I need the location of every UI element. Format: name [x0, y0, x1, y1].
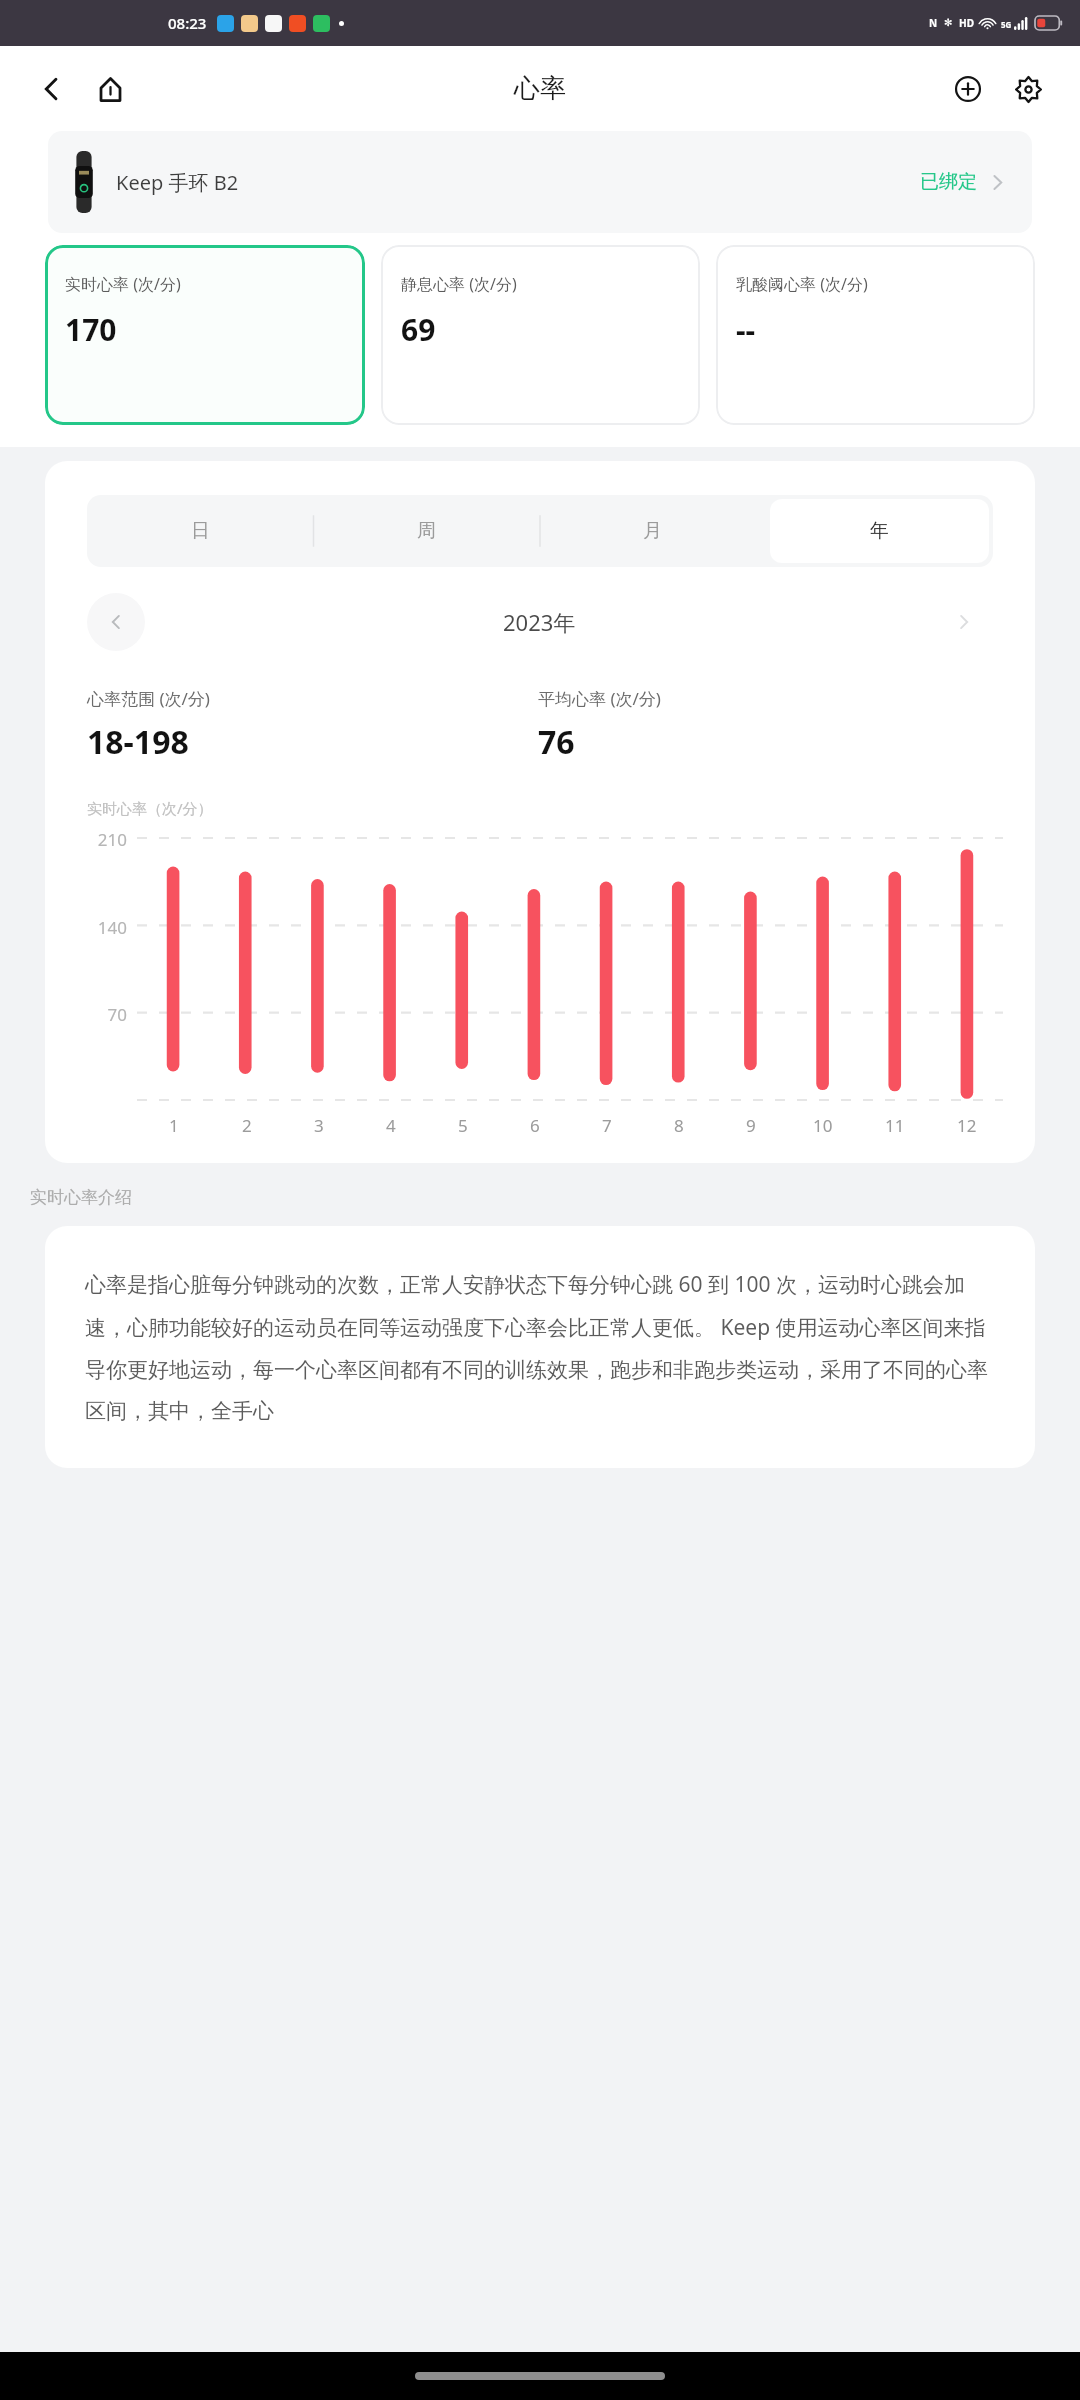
staticText: 静息心率 (次/分): [401, 273, 517, 295]
staticText: 乳酸阈心率 (次/分): [736, 273, 868, 295]
button[interactable]: 静息心率 (次/分): [381, 245, 700, 425]
button[interactable]: Previous year: [87, 593, 145, 651]
staticText: 140: [97, 916, 127, 939]
button[interactable]: 日: [91, 499, 309, 563]
staticText: 170: [65, 309, 117, 350]
staticText: 实时心率介绍: [30, 1187, 132, 1208]
button[interactable]: Add: [942, 63, 994, 115]
button[interactable]: 年: [770, 499, 989, 563]
staticText: 5G: [1001, 19, 1012, 30]
staticText: 76: [538, 720, 575, 764]
staticText: 4: [386, 1114, 396, 1137]
staticText: 心率范围 (次/分): [87, 687, 210, 710]
staticText: 2023年: [503, 607, 576, 637]
staticText: 周: [417, 519, 436, 543]
staticText: 2: [242, 1114, 252, 1137]
button[interactable]: 乳酸阈心率 (次/分): [716, 245, 1035, 425]
staticText: 5: [458, 1114, 468, 1137]
button[interactable]: 实时心率 (次/分): [45, 245, 365, 425]
staticText: N: [929, 16, 938, 30]
button[interactable]: Next year: [935, 593, 993, 651]
staticText: 实时心率 (次/分): [65, 273, 181, 295]
staticText: 12: [957, 1114, 977, 1137]
button[interactable]: Keep 手环 B2: [48, 131, 1032, 233]
staticText: 月: [643, 519, 662, 543]
staticText: 3: [314, 1114, 324, 1137]
staticText: 已绑定: [920, 170, 977, 194]
staticText: 70: [107, 1003, 127, 1026]
staticText: 11: [885, 1114, 905, 1137]
staticText: 9: [746, 1114, 756, 1137]
staticText: 年: [870, 519, 889, 543]
staticText: 心率是指心脏每分钟跳动的次数，正常人安静状态下每分钟心跳 60 到 100 次，…: [85, 1270, 995, 1424]
staticText: --: [736, 309, 756, 350]
staticText: ✻: [944, 17, 953, 29]
button[interactable]: Home: [84, 63, 136, 115]
staticText: 心率: [514, 72, 566, 105]
staticText: 6: [530, 1114, 540, 1137]
staticText: 1: [169, 1114, 179, 1137]
button[interactable]: Back: [26, 63, 78, 115]
staticText: Keep 手环 B2: [116, 169, 239, 196]
staticText: 平均心率 (次/分): [538, 687, 661, 710]
staticText: 10: [813, 1114, 833, 1137]
staticText: 08:23: [168, 13, 207, 33]
staticText: 210: [97, 828, 127, 851]
staticText: 实时心率（次/分）: [87, 798, 213, 818]
staticText: 8: [674, 1114, 684, 1137]
button[interactable]: 周: [317, 499, 535, 563]
staticText: 日: [191, 519, 210, 543]
staticText: 18-198: [87, 720, 189, 764]
staticText: HD: [959, 16, 974, 30]
staticText: 7: [602, 1114, 612, 1137]
button[interactable]: 月: [543, 499, 762, 563]
staticText: 69: [401, 309, 436, 350]
button[interactable]: Settings: [1002, 63, 1054, 115]
